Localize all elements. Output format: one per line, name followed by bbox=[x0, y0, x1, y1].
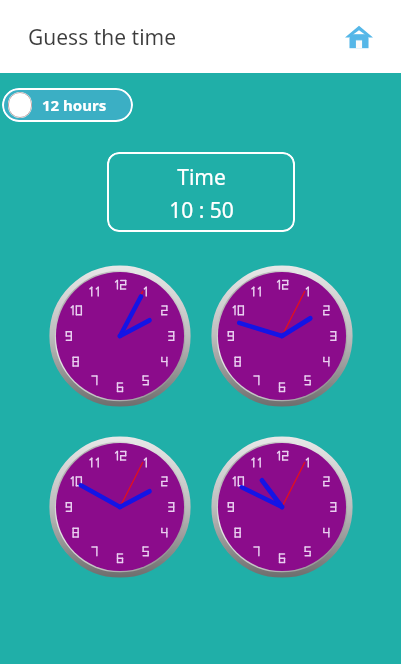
button[interactable]: Clock bbox=[50, 266, 190, 406]
button[interactable]: Home bbox=[339, 17, 379, 57]
staticText: Time bbox=[177, 163, 226, 192]
button[interactable]: Clock bbox=[212, 266, 352, 406]
staticText: 12 hours bbox=[42, 95, 107, 115]
button[interactable]: Clock bbox=[50, 437, 190, 577]
button[interactable]: Clock bbox=[212, 437, 352, 577]
staticText: 10 : 50 bbox=[169, 196, 234, 225]
button[interactable]: 12 hours bbox=[2, 88, 133, 122]
staticText: Guess the time bbox=[28, 23, 177, 52]
button[interactable]: Time bbox=[107, 152, 295, 232]
